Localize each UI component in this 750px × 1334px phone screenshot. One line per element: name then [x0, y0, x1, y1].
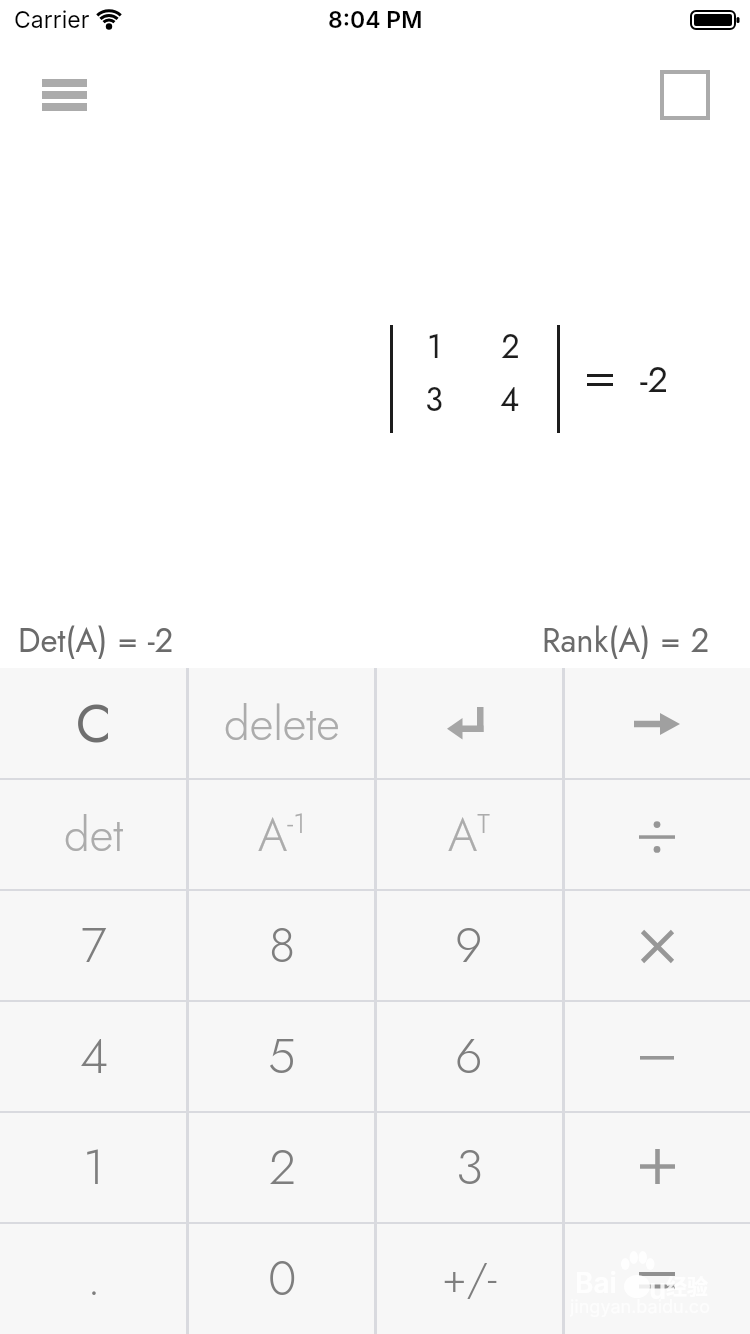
- staticText: 6: [455, 1021, 483, 1092]
- button[interactable]: 9: [375, 890, 563, 1001]
- staticText: 1: [83, 1132, 105, 1203]
- button[interactable]: 3: [375, 1112, 563, 1223]
- button[interactable]: det: [0, 779, 188, 890]
- staticText: u: [649, 1272, 667, 1306]
- staticText: +/-: [442, 1248, 497, 1309]
- staticText: 7: [81, 910, 107, 981]
- button[interactable]: 0: [188, 1223, 376, 1334]
- staticText: 1: [427, 323, 442, 371]
- staticText: 8: [269, 910, 296, 981]
- staticText: A-1: [258, 802, 306, 868]
- staticText: -2: [640, 353, 669, 405]
- staticText: delete: [224, 691, 340, 757]
- staticText: Carrier: [14, 6, 90, 34]
- button[interactable]: 6: [375, 1001, 563, 1112]
- staticText: AT: [448, 802, 490, 868]
- button[interactable]: [563, 1112, 750, 1223]
- button[interactable]: A-1: [188, 779, 376, 890]
- staticText: 0: [268, 1243, 297, 1314]
- staticText: 2: [501, 323, 520, 371]
- button[interactable]: 1: [0, 1112, 188, 1223]
- button[interactable]: 7: [0, 890, 188, 1001]
- button[interactable]: [660, 70, 710, 120]
- button[interactable]: 4: [0, 1001, 188, 1112]
- staticText: 9: [455, 910, 483, 981]
- button[interactable]: +/-: [375, 1223, 563, 1334]
- button[interactable]: [375, 668, 563, 779]
- staticText: C: [76, 686, 112, 761]
- button[interactable]: 2: [188, 1112, 376, 1223]
- button[interactable]: [34, 70, 94, 120]
- button[interactable]: .: [0, 1223, 188, 1334]
- staticText: 2: [269, 1132, 296, 1203]
- button[interactable]: 5: [188, 1001, 376, 1112]
- button[interactable]: [563, 779, 750, 890]
- staticText: .: [87, 1243, 101, 1314]
- staticText: 4: [500, 376, 520, 424]
- staticText: 3: [425, 376, 444, 424]
- button[interactable]: delete: [188, 668, 376, 779]
- staticText: Det(A) = -2: [18, 617, 174, 665]
- staticText: Rank(A) = 2: [542, 617, 710, 665]
- button[interactable]: [563, 1001, 750, 1112]
- staticText: 8:04 PM: [328, 6, 423, 34]
- button[interactable]: 8: [188, 890, 376, 1001]
- staticText: 经验: [666, 1270, 708, 1300]
- button[interactable]: [563, 890, 750, 1001]
- button[interactable]: [563, 1223, 750, 1334]
- button[interactable]: C: [0, 668, 188, 779]
- button[interactable]: [563, 668, 750, 779]
- staticText: 5: [268, 1021, 296, 1092]
- staticText: Bai: [575, 1266, 617, 1300]
- button[interactable]: AT: [375, 779, 563, 890]
- staticText: 4: [80, 1021, 108, 1092]
- staticText: det: [64, 802, 124, 868]
- staticText: 3: [456, 1132, 483, 1203]
